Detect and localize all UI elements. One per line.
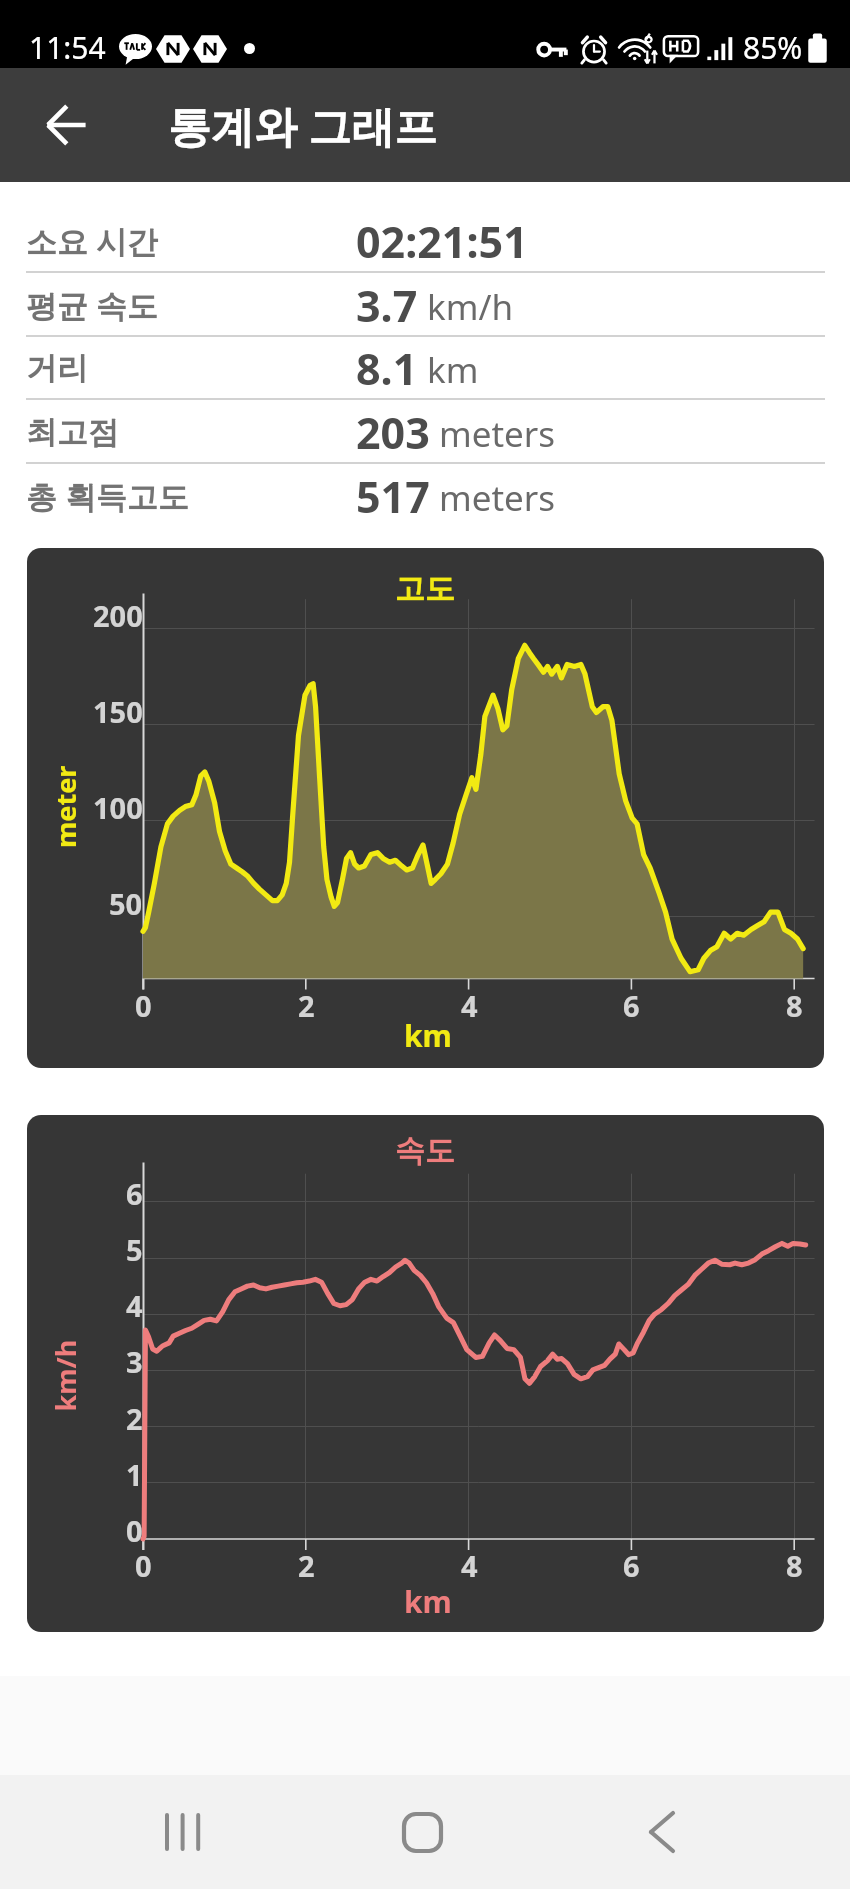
button[interactable]: 속도 [27, 1115, 824, 1632]
staticText: 2 [126, 1399, 143, 1438]
staticText: 최고점 [26, 413, 119, 452]
staticText: 2 [298, 986, 315, 1025]
staticText: 02:21:51 [356, 212, 528, 271]
button[interactable]: Back [30, 89, 102, 161]
staticText: 평균 속도 [26, 284, 159, 326]
staticText: 6 [623, 986, 640, 1025]
staticText: 1 [126, 1455, 143, 1494]
staticText: km [404, 1015, 452, 1056]
staticText: 0 [135, 1546, 152, 1585]
staticText: 4 [461, 986, 478, 1025]
staticText: 소요 시간 [26, 220, 159, 262]
button[interactable]: 고도 [27, 548, 824, 1068]
button[interactable]: 거리 [0, 336, 850, 400]
staticText: 0 [126, 1511, 143, 1550]
staticText: meter [47, 765, 84, 848]
button[interactable]: Recents [130, 1777, 240, 1887]
staticText: 0 [135, 986, 152, 1025]
staticText: km [427, 346, 479, 394]
staticText: 6 [126, 1174, 143, 1213]
staticText: km/h [427, 283, 514, 331]
button[interactable]: 평균 속도 [0, 273, 850, 337]
staticText: 517 [356, 467, 430, 526]
staticText: 거리 [26, 349, 88, 388]
staticText: meters [439, 410, 556, 458]
button[interactable]: Back [607, 1777, 717, 1887]
staticText: 85% [743, 27, 803, 68]
staticText: 고도 [395, 570, 455, 608]
staticText: 8 [786, 1546, 803, 1585]
staticText: 8.1 [356, 339, 418, 398]
button[interactable]: 최고점 [0, 400, 850, 464]
staticText: 8 [786, 986, 803, 1025]
staticText: 6 [623, 1546, 640, 1585]
staticText: 11:54 [29, 27, 106, 68]
staticText: 203 [356, 403, 430, 462]
staticText: 100 [93, 788, 143, 827]
button[interactable]: 총 획득고도 [0, 464, 850, 528]
staticText: 50 [109, 884, 143, 923]
button[interactable]: 소요 시간 [0, 209, 850, 273]
staticText: 3.7 [356, 276, 418, 335]
staticText: 200 [93, 596, 143, 635]
staticText: km/h [46, 1339, 83, 1411]
button[interactable]: Home [367, 1777, 477, 1887]
staticText: 5 [126, 1230, 143, 1269]
staticText: 3 [126, 1342, 143, 1381]
staticText: 통계와 그래프 [168, 96, 438, 155]
staticText: meters [439, 474, 556, 522]
staticText: 2 [298, 1546, 315, 1585]
staticText: km [404, 1581, 452, 1622]
staticText: 4 [461, 1546, 478, 1585]
staticText: 속도 [395, 1132, 455, 1170]
staticText: 150 [93, 692, 143, 731]
staticText: 4 [126, 1286, 143, 1325]
staticText: 총 획득고도 [26, 475, 190, 517]
